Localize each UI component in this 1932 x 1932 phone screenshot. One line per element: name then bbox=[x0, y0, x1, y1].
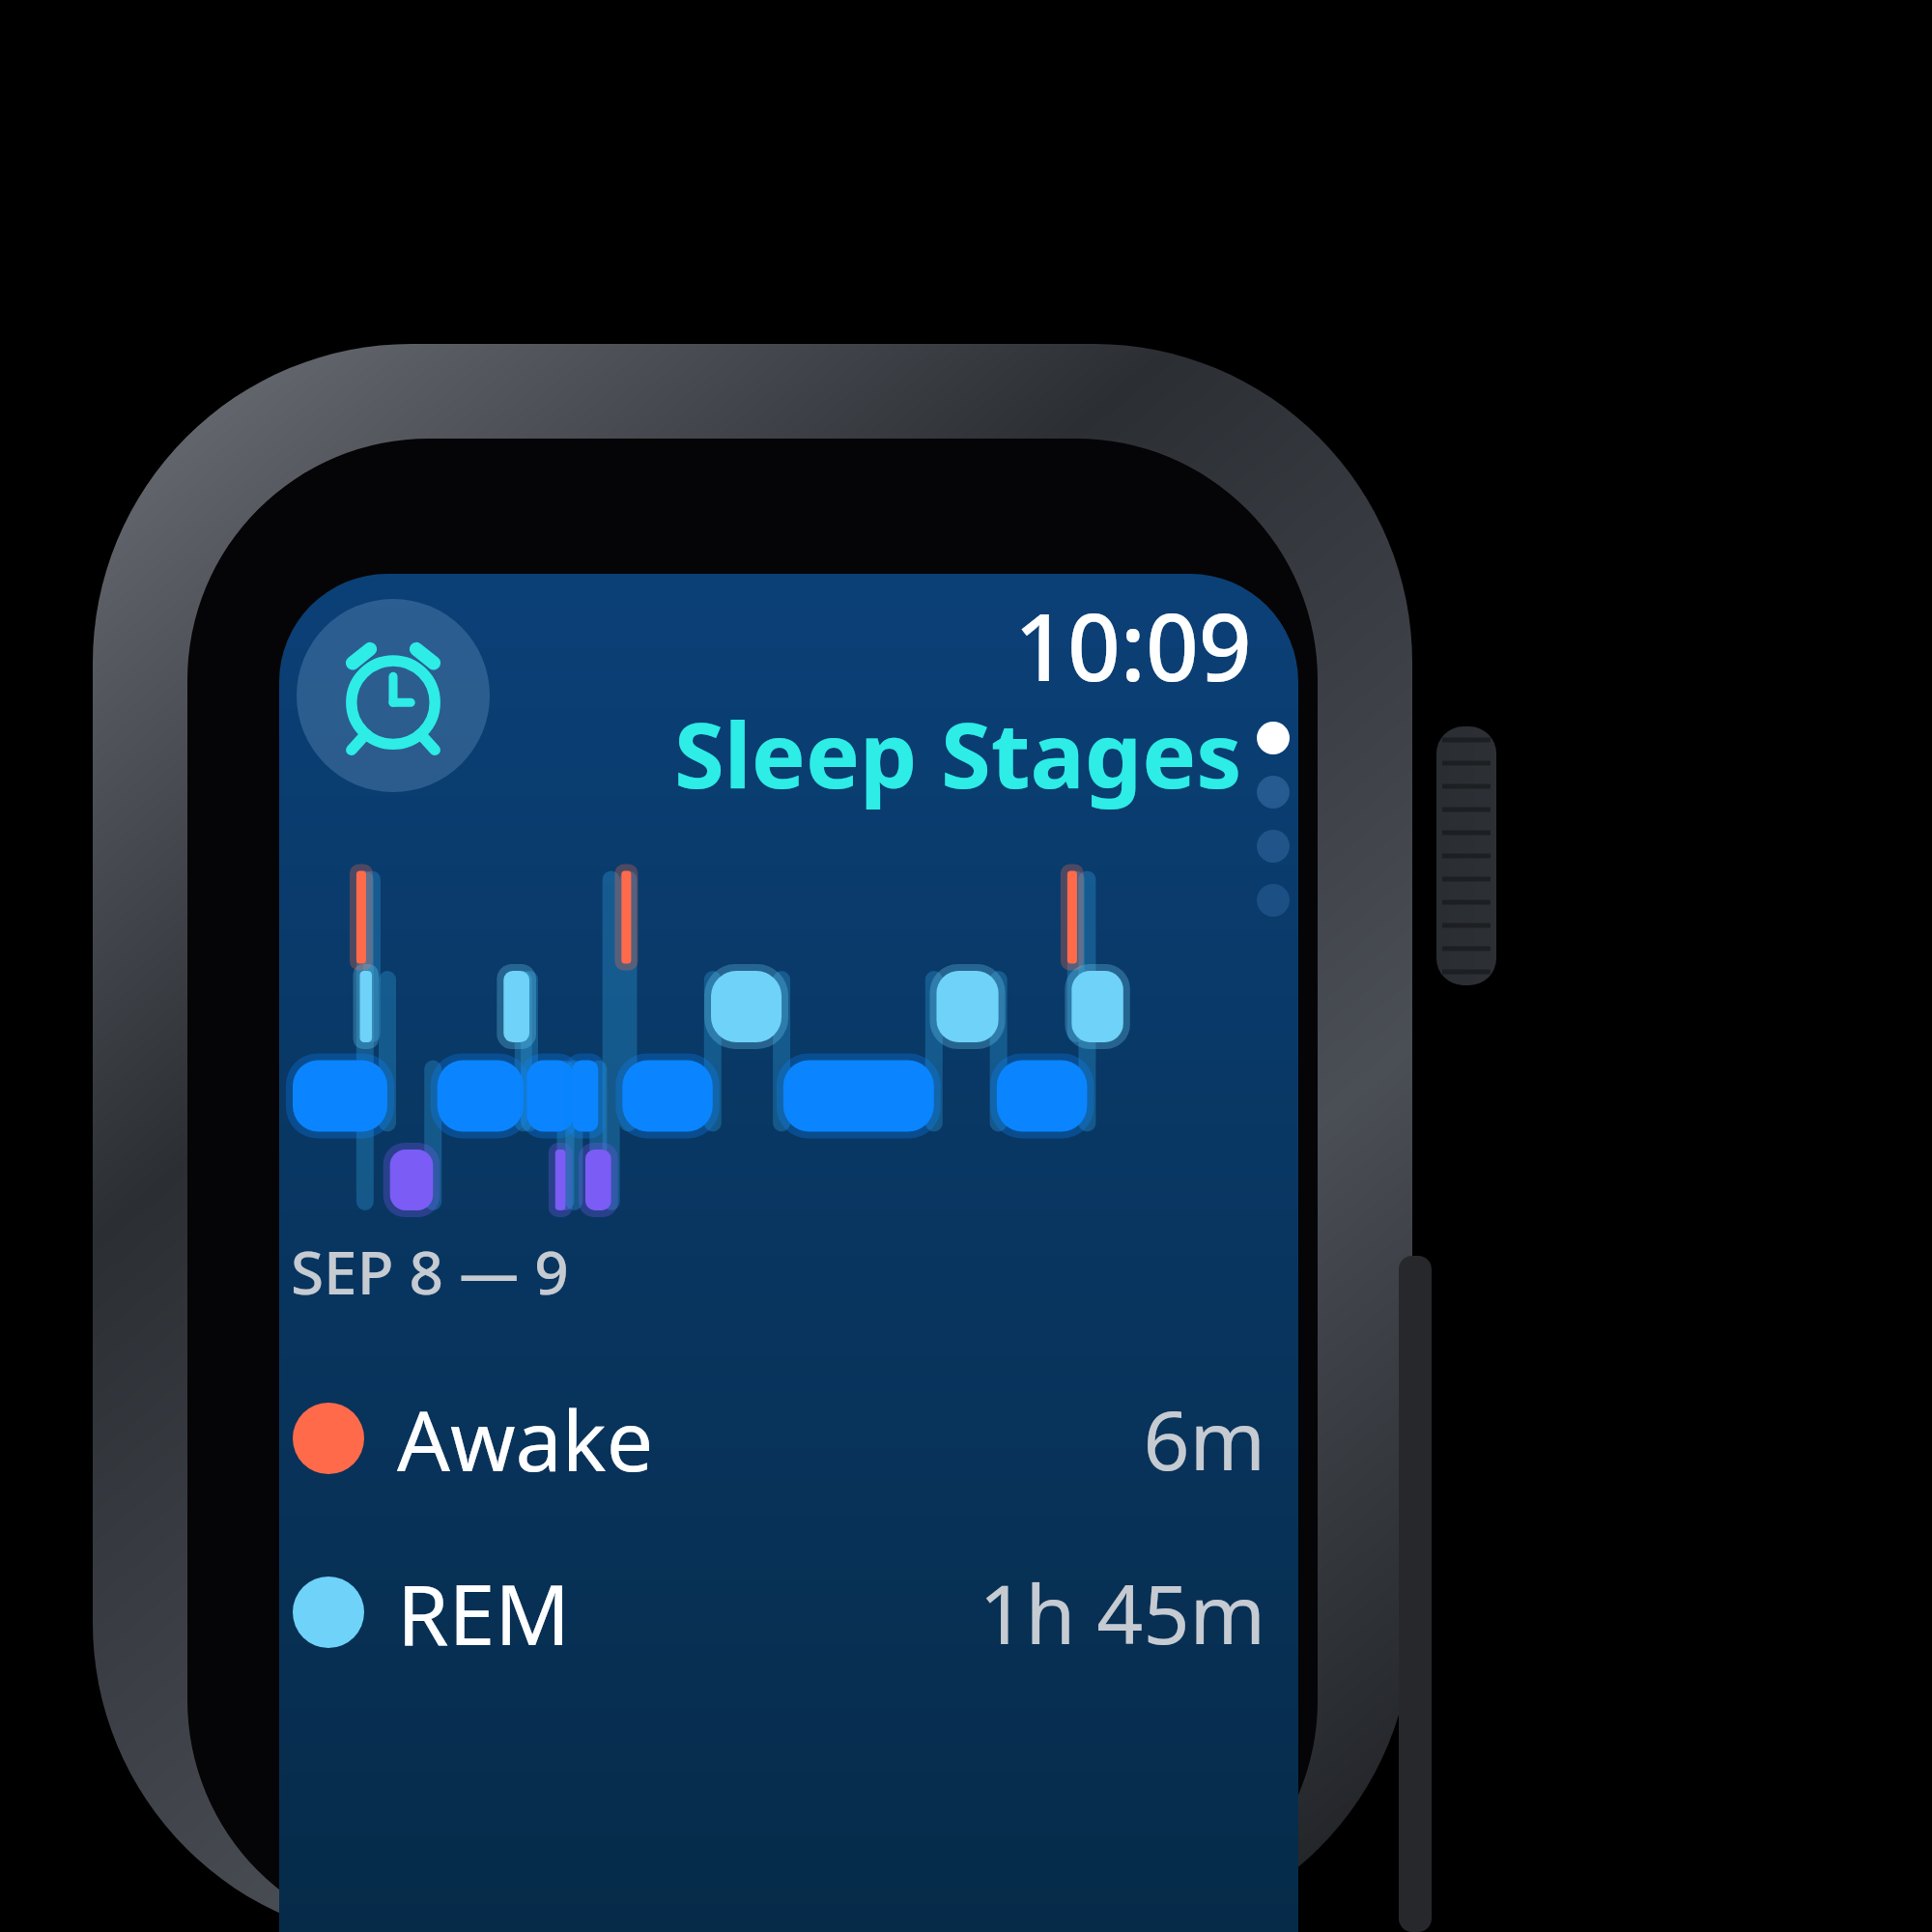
staticText: 1h 45m bbox=[979, 1557, 1265, 1667]
staticText: 10:09 bbox=[1014, 582, 1252, 708]
staticText: Sleep Stages bbox=[674, 692, 1242, 815]
staticText: REM bbox=[397, 1556, 571, 1669]
button[interactable]: REM bbox=[293, 1540, 1265, 1685]
button[interactable]: Alarm bbox=[297, 599, 490, 792]
staticText: SEP 8 — 9 bbox=[291, 1231, 569, 1312]
staticText: 6m bbox=[1143, 1383, 1265, 1493]
staticText: Awake bbox=[397, 1382, 654, 1495]
button[interactable]: Awake bbox=[293, 1366, 1265, 1511]
